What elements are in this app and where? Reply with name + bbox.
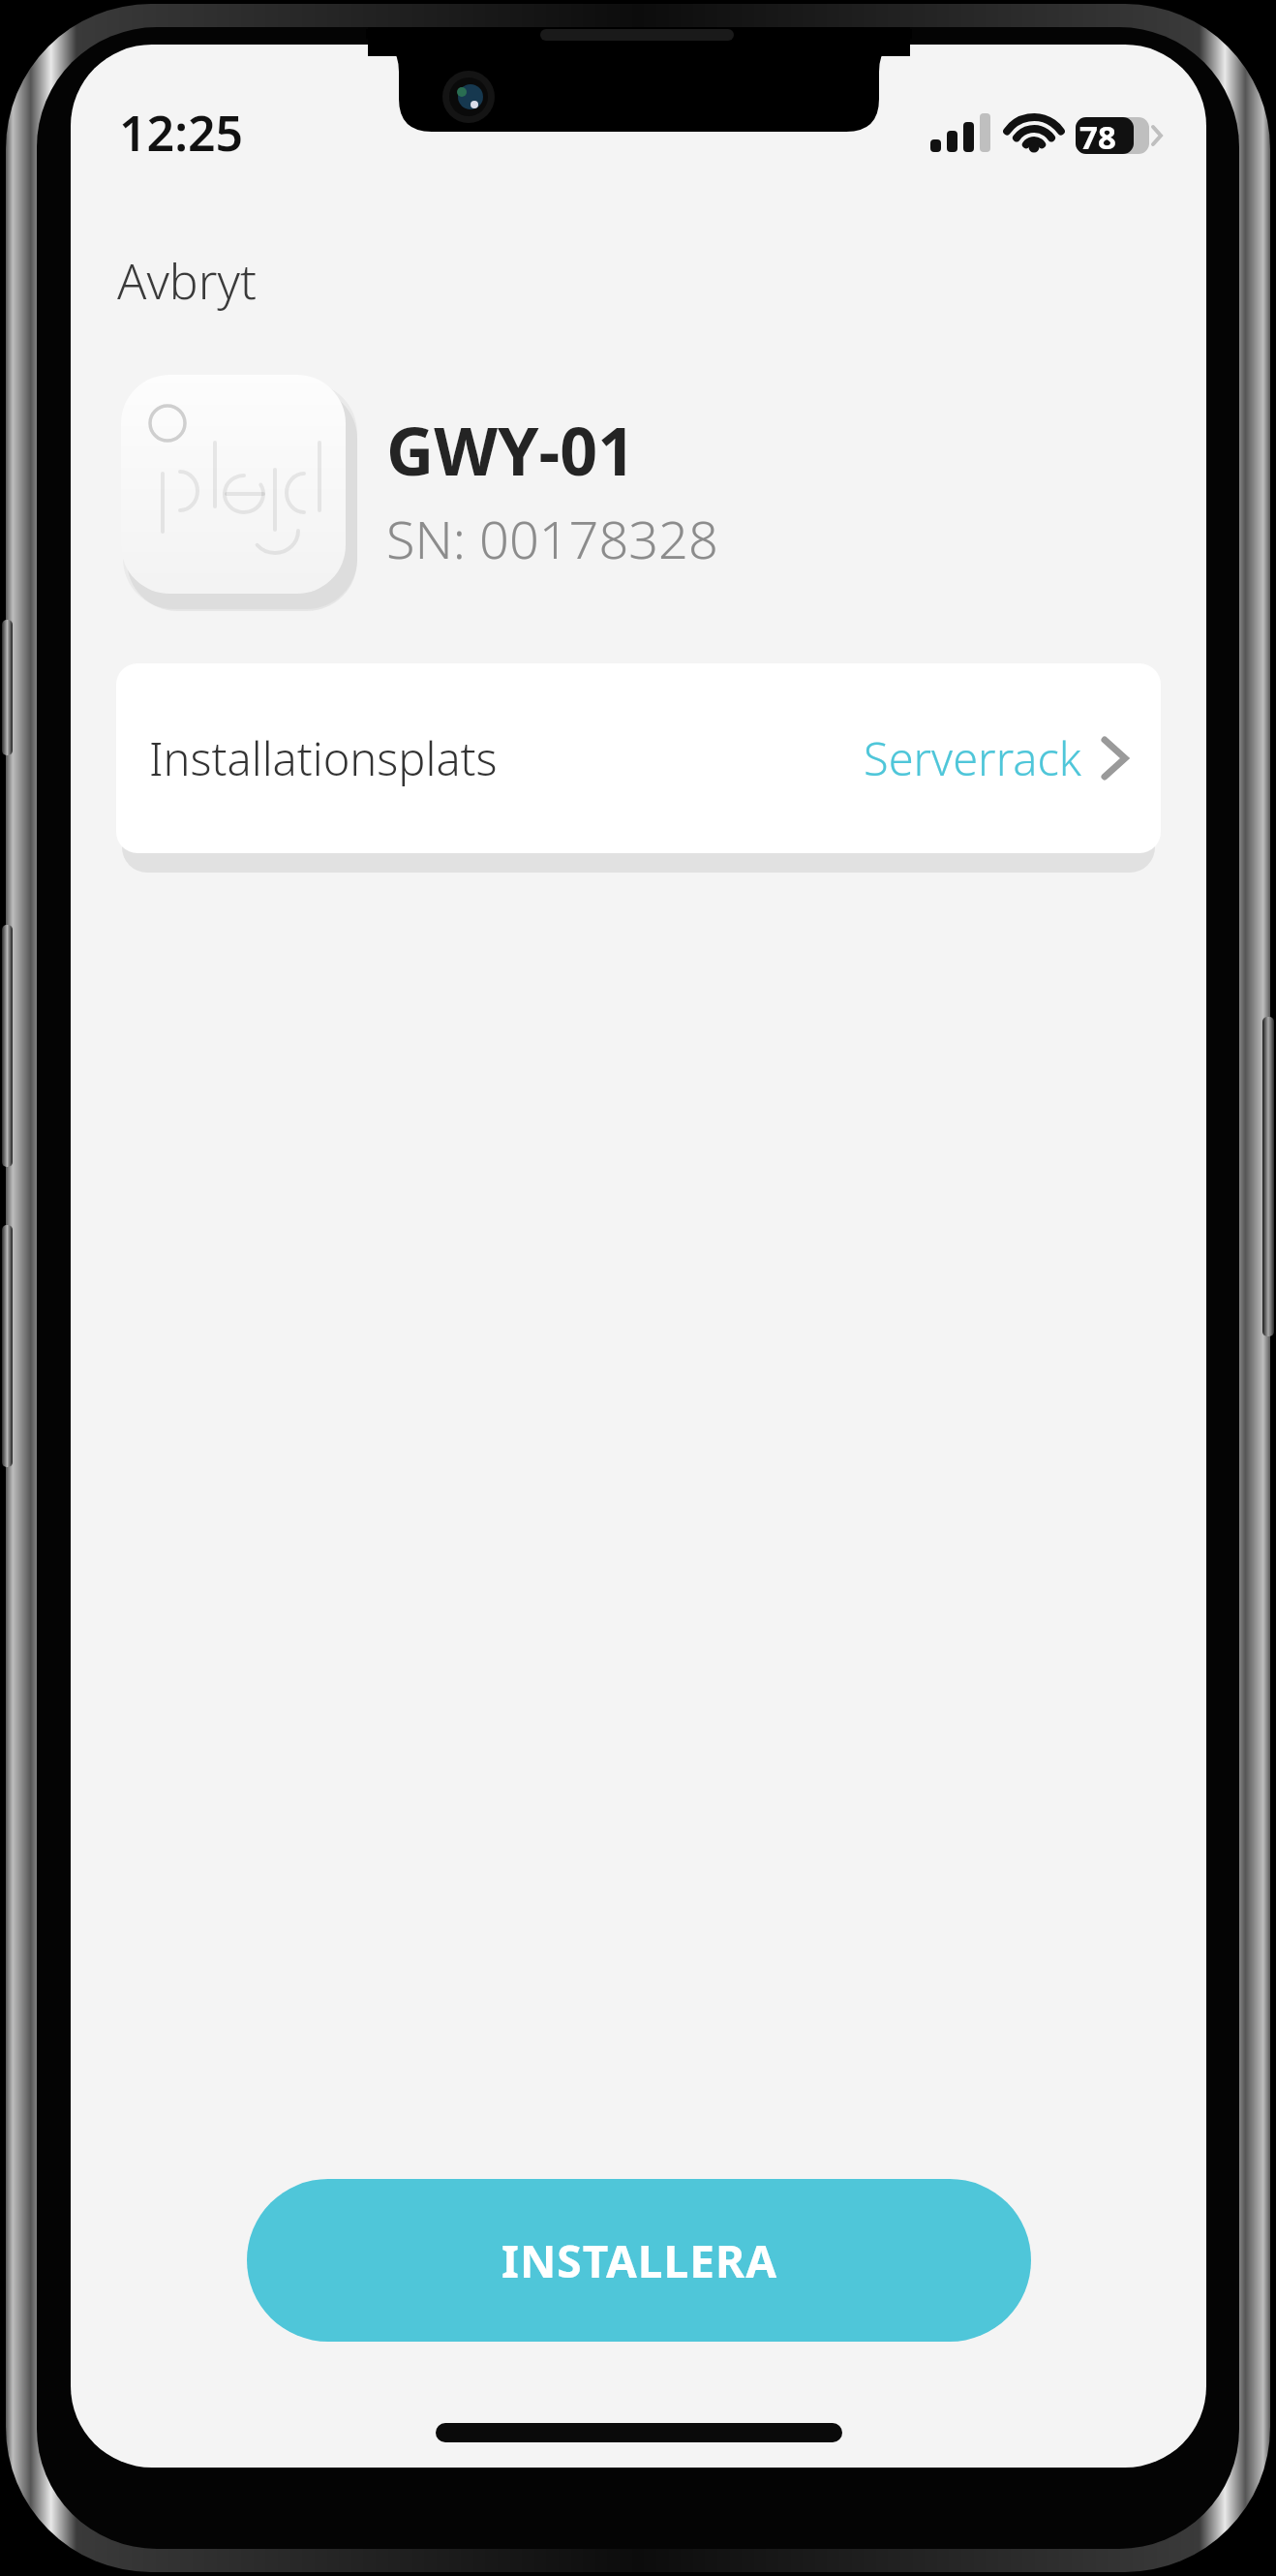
button[interactable]: Installationsplats — [116, 663, 1161, 853]
staticText: GWY-01 — [386, 405, 636, 495]
button[interactable]: Avbryt — [100, 234, 274, 327]
staticText: Avbryt — [117, 248, 257, 314]
staticText: INSTALLERA — [501, 2230, 777, 2291]
staticText: 12:25 — [119, 100, 244, 166]
button[interactable]: INSTALLERA — [247, 2179, 1031, 2342]
staticText: Installationsplats — [149, 727, 498, 789]
staticText: Serverrack — [864, 727, 1081, 789]
staticText: 78 — [1079, 115, 1116, 159]
staticText: SN: 00178328 — [386, 503, 718, 574]
